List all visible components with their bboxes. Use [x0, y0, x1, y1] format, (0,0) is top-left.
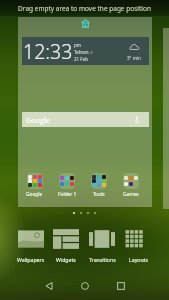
button[interactable]: Tools [83, 173, 115, 198]
button[interactable]: 12:33 [18, 17, 152, 207]
staticText: pm [74, 42, 81, 48]
staticText: Transitions [89, 256, 116, 263]
staticText: Wallpapers [17, 256, 45, 263]
staticText: Tehran [74, 49, 89, 55]
button[interactable]: Widgets [48, 223, 84, 266]
staticText: Google [26, 115, 51, 125]
button[interactable]: Recent apps [103, 272, 139, 300]
button[interactable]: Games [115, 173, 147, 198]
button[interactable]: Transitions [84, 223, 120, 266]
staticText: Google [26, 191, 43, 198]
staticText: 3° min [127, 55, 141, 61]
staticText: 12:33 [23, 38, 73, 65]
button[interactable]: Layouts [120, 223, 156, 266]
staticText: Folder 1 [58, 191, 77, 198]
button[interactable]: 12:33 [22, 37, 149, 65]
button[interactable]: Home [67, 272, 103, 300]
staticText: Games [123, 191, 139, 198]
button[interactable]: Folder 1 [51, 173, 83, 198]
button[interactable]: Google [18, 173, 51, 198]
button[interactable]: Back [31, 272, 67, 300]
button[interactable]: Google [22, 112, 149, 127]
button[interactable]: Wallpapers [13, 223, 48, 266]
staticText: 21 Feb [74, 56, 88, 62]
staticText: Widgets [56, 256, 76, 263]
staticText: Tools [93, 191, 105, 198]
button[interactable] [163, 28, 169, 209]
staticText: Layouts [129, 256, 148, 263]
staticText: Drag empty area to move the page positio… [18, 4, 151, 13]
